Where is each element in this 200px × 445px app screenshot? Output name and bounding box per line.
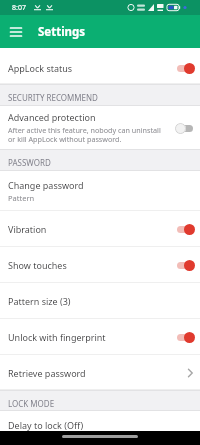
button[interactable]: Change password [0,171,200,211]
staticText: SECURITY RECOMMEND [8,92,98,103]
staticText: Pattern [8,193,35,203]
button[interactable]: Show touches [0,247,200,283]
button[interactable]: Delay to lock (Off) [0,411,200,431]
staticText: Show touches [8,259,67,271]
staticText: Pattern size (3) [8,295,71,307]
button[interactable]: AppLock status [0,48,200,84]
staticText: LOCK MODE [8,398,55,409]
staticText: Vibration [8,223,47,235]
staticText: Unlock with fingerprint [8,331,106,343]
button[interactable]: Unlock with fingerprint [0,319,200,355]
staticText: Advanced protection [8,111,96,123]
staticText: After active this feature, nobody can un… [8,125,161,145]
staticText: AppLock status [8,62,73,74]
button[interactable] [6,22,26,42]
staticText: Delay to lock (Off) [8,419,84,431]
button[interactable]: Retrieve password [0,355,200,390]
staticText: 8:07 [12,3,26,13]
staticText: Settings [38,24,86,40]
button[interactable]: Advanced protection [0,106,200,149]
staticText: Change password [8,179,84,191]
staticText: Retrieve password [8,367,86,379]
staticText: PASSWORD [8,157,51,168]
button[interactable]: Pattern size (3) [0,283,200,319]
button[interactable]: Vibration [0,211,200,247]
